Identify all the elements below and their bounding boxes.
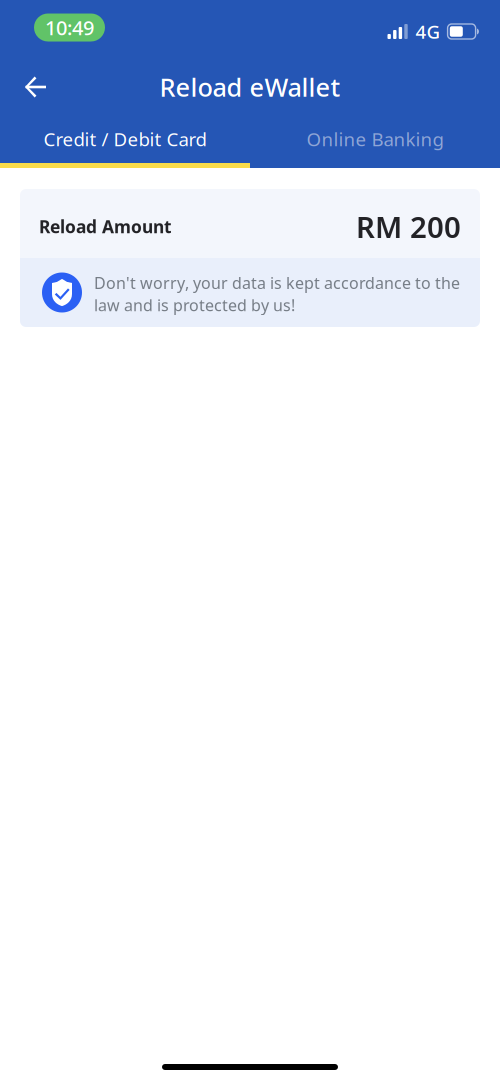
staticText: Reload eWallet [159, 70, 340, 104]
staticText: Credit / Debit Card [43, 127, 206, 151]
staticText: 10:49 [45, 14, 94, 41]
staticText: law and is protected by us! [94, 294, 295, 316]
button[interactable]: Online Banking [250, 115, 500, 168]
staticText: RM 200 [356, 207, 461, 246]
staticText: Online Banking [306, 127, 443, 151]
staticText: Don't worry, your data is kept accordanc… [94, 272, 460, 293]
staticText: 4G [416, 19, 441, 44]
button[interactable]: Back [14, 66, 58, 107]
button[interactable]: Credit / Debit Card [0, 115, 250, 168]
staticText: Reload Amount [39, 215, 172, 238]
